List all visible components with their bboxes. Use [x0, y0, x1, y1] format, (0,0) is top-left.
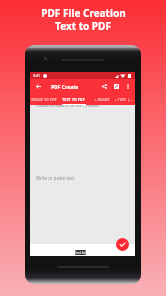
staticText: Choose or create a PDF file. | Portrait [36, 103, 99, 108]
button[interactable]: IMAGE TO PDF [29, 94, 58, 105]
button[interactable]: Share [99, 81, 110, 92]
button[interactable]: Done [116, 238, 129, 251]
staticText: TEXT TO PDF [62, 97, 85, 102]
staticText: Test Ad [75, 251, 86, 255]
button[interactable]: Test Ad [75, 250, 86, 255]
button[interactable]: Open [111, 81, 122, 92]
staticText: IMAGE TO PDF [31, 97, 57, 102]
staticText: + TEXT |... [114, 97, 133, 102]
staticText: 3:41 [33, 73, 41, 78]
button[interactable]: + TEXT |... [111, 94, 135, 105]
staticText: Text to PDF [55, 19, 111, 33]
button[interactable]: More options [122, 81, 133, 92]
staticText: + IMAGE [94, 97, 110, 102]
button[interactable]: + IMAGE [91, 94, 112, 105]
staticText: Write or paste text [36, 175, 75, 181]
button[interactable]: TEXT TO PDF [59, 94, 88, 105]
button[interactable]: Back [33, 81, 44, 92]
staticText: PDF File Creation [41, 6, 126, 20]
staticText: PDF Create [51, 84, 79, 91]
